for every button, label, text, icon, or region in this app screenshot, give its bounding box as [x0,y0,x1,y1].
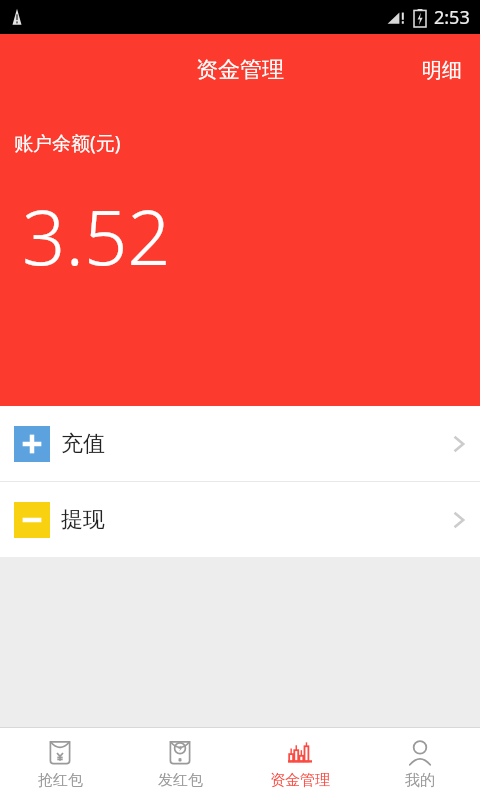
button[interactable]: 明细 [404,44,480,97]
staticText: 2:53 [434,5,470,30]
button[interactable]: 我的 [360,728,480,800]
staticText: 账户余额(元) [14,130,121,156]
button[interactable]: 充值 [0,406,480,481]
button[interactable]: 资金管理 [240,728,360,800]
staticText: 提现 [61,506,105,534]
button[interactable]: 发红包 [120,728,240,800]
staticText: 明细 [422,58,462,83]
button[interactable]: 抢红包 [0,728,120,800]
staticText: 资金管理 [270,771,330,790]
staticText: 抢红包 [38,771,83,790]
staticText: 充值 [61,430,105,458]
staticText: 3.52 [22,184,171,288]
staticText: 资金管理 [196,56,284,84]
button[interactable]: 提现 [0,482,480,557]
staticText: 我的 [405,771,435,790]
staticText: 发红包 [158,771,203,790]
